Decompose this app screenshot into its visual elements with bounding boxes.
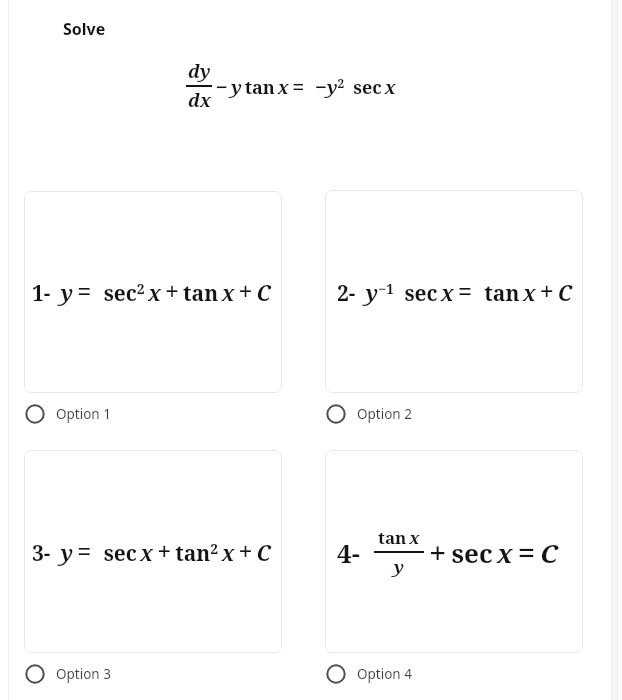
button[interactable]: Option 2 [325, 190, 583, 393]
staticText: Option 1 [56, 405, 111, 423]
button[interactable]: Option 4 [325, 450, 583, 653]
staticText: Option 4 [357, 665, 412, 683]
staticText: tan x [378, 526, 420, 549]
button[interactable]: Option 3 [24, 450, 282, 653]
staticText: 4- [337, 535, 360, 570]
staticText: 3- y = sec x + tan2 x + C [32, 535, 271, 569]
staticText: dx [188, 88, 211, 113]
staticText: Option 2 [357, 405, 412, 423]
staticText: − y tan x = −y2 sec x [212, 72, 396, 101]
staticText: dy [188, 59, 211, 84]
staticText: 2- y−1 sec x = tan x + C [337, 275, 572, 309]
button[interactable]: Option 4 [326, 664, 412, 684]
staticText: + sec x = C [424, 531, 558, 573]
staticText: y [394, 555, 404, 578]
staticText: 1- y = sec2 x + tan x + C [32, 275, 271, 309]
button[interactable]: Option 3 [25, 664, 111, 684]
button[interactable]: Option 2 [326, 404, 412, 424]
button[interactable]: Option 1 [24, 191, 282, 393]
button[interactable]: Option 1 [25, 404, 111, 424]
staticText: Solve [63, 18, 106, 40]
staticText: Option 3 [56, 665, 111, 683]
